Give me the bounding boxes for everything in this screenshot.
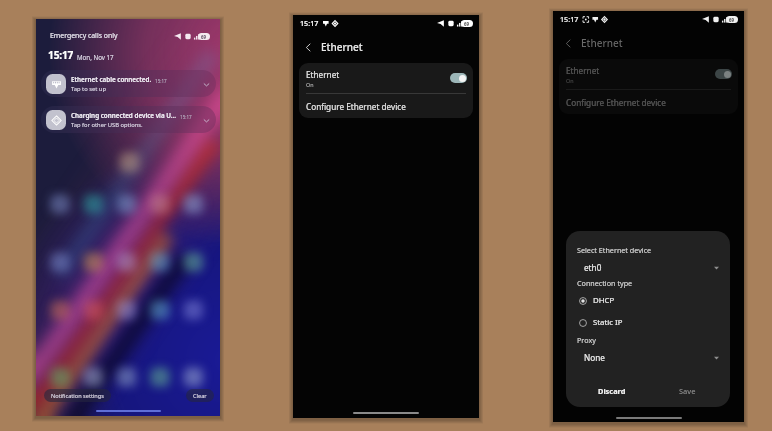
staticText: 15:17 bbox=[560, 14, 579, 24]
staticText: Emergency calls only bbox=[50, 31, 118, 40]
button[interactable]: Clear bbox=[186, 389, 214, 402]
button[interactable]: Configure Ethernet device bbox=[559, 90, 738, 114]
staticText: Ethernet cable connected. bbox=[71, 75, 152, 84]
staticText: 15:17 bbox=[180, 114, 192, 120]
button[interactable]: DHCP bbox=[577, 295, 719, 306]
staticText: Ethernet bbox=[566, 65, 600, 76]
staticText: Mon, Nov 17 bbox=[77, 53, 114, 61]
staticText: 69 bbox=[729, 17, 735, 23]
button[interactable]: Charging connected device via U... bbox=[41, 106, 216, 133]
button[interactable]: Expand notification bbox=[200, 78, 212, 90]
staticText: Ethernet bbox=[581, 36, 623, 50]
button[interactable]: Discard bbox=[594, 384, 630, 398]
staticText: Configure Ethernet device bbox=[306, 101, 406, 112]
staticText: Proxy bbox=[577, 335, 596, 345]
staticText: DHCP bbox=[593, 295, 615, 306]
staticText: Clear bbox=[193, 392, 207, 400]
staticText: Discard bbox=[598, 386, 626, 396]
button[interactable]: Ethernet bbox=[559, 59, 738, 89]
staticText: None bbox=[584, 352, 605, 363]
button[interactable]: Notification settings bbox=[44, 389, 111, 402]
button[interactable]: Ethernet toggle bbox=[715, 69, 732, 79]
staticText: Tap to set up bbox=[71, 85, 106, 93]
staticText: 15:17 bbox=[300, 18, 319, 28]
staticText: Configure Ethernet device bbox=[566, 97, 666, 108]
staticText: Ethernet bbox=[321, 40, 363, 54]
button[interactable]: Back bbox=[302, 41, 315, 54]
button[interactable]: eth0 bbox=[577, 262, 719, 273]
staticText: 15:17 bbox=[155, 78, 167, 84]
button[interactable]: Back bbox=[562, 37, 575, 50]
staticText: Connection type bbox=[577, 278, 633, 288]
staticText: Static IP bbox=[593, 317, 623, 328]
button[interactable]: Expand notification bbox=[200, 114, 212, 126]
button[interactable]: Configure Ethernet device bbox=[299, 94, 473, 118]
staticText: 69 bbox=[201, 34, 207, 40]
button[interactable]: Ethernet cable connected. bbox=[41, 70, 216, 97]
staticText: Notification settings bbox=[51, 392, 104, 400]
staticText: 15:17 bbox=[48, 48, 74, 62]
button[interactable]: Ethernet toggle bbox=[450, 73, 467, 83]
staticText: On bbox=[566, 77, 574, 84]
staticText: On bbox=[306, 81, 314, 88]
button[interactable]: None bbox=[577, 352, 719, 363]
staticText: Save bbox=[679, 386, 696, 396]
staticText: eth0 bbox=[584, 262, 602, 273]
staticText: Tap for other USB options. bbox=[71, 121, 143, 129]
staticText: 69 bbox=[464, 21, 470, 27]
staticText: Ethernet bbox=[306, 69, 340, 80]
staticText: Select Ethernet device bbox=[577, 245, 652, 255]
button[interactable]: Static IP bbox=[577, 317, 719, 328]
button[interactable]: Ethernet bbox=[299, 63, 473, 93]
staticText: Charging connected device via U... bbox=[71, 111, 177, 120]
button[interactable]: Save bbox=[675, 384, 700, 398]
